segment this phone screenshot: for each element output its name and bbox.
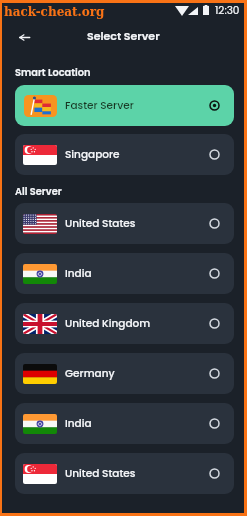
button[interactable]: Singapore — [15, 134, 234, 175]
button[interactable]: India — [15, 403, 234, 444]
staticText: United States — [65, 466, 136, 481]
staticText: Smart Location — [15, 66, 91, 80]
button[interactable]: United Kingdom — [15, 303, 234, 344]
button[interactable]: India — [15, 253, 234, 294]
staticText: India — [65, 266, 92, 281]
staticText: India — [65, 416, 92, 431]
staticText: Select Server — [87, 28, 160, 43]
staticText: Faster Server — [65, 98, 134, 113]
button[interactable]: United States — [15, 203, 234, 244]
button[interactable]: Germany — [15, 353, 234, 394]
staticText: Singapore — [65, 147, 120, 162]
button[interactable]: Back — [11, 24, 37, 50]
staticText: hack-cheat.org — [4, 5, 105, 19]
staticText: Germany — [65, 366, 115, 381]
staticText: United States — [65, 216, 136, 231]
staticText: All Server — [15, 185, 62, 199]
staticText: United Kingdom — [65, 316, 151, 331]
button[interactable]: Faster Server — [15, 85, 234, 126]
button[interactable]: United States — [15, 453, 234, 494]
staticText: 12:30 — [215, 3, 240, 18]
